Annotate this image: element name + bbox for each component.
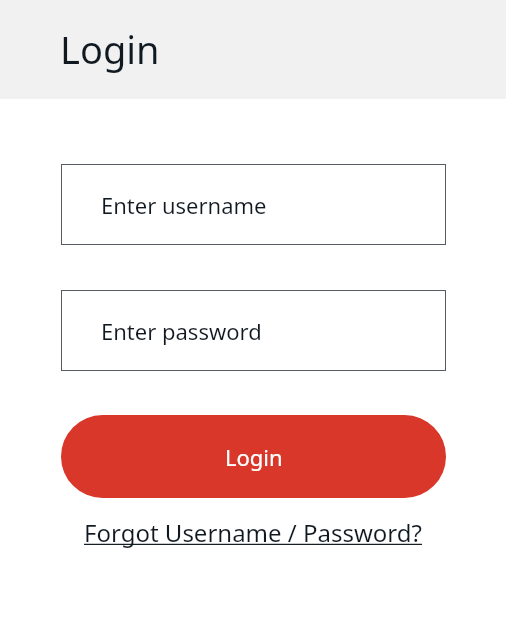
staticText: Login bbox=[225, 442, 283, 472]
button[interactable]: Forgot Username / Password? bbox=[84, 516, 422, 549]
button[interactable]: Enter password bbox=[61, 290, 446, 371]
button[interactable]: Enter username bbox=[61, 164, 446, 245]
staticText: Enter username bbox=[101, 190, 267, 220]
staticText: Login bbox=[60, 23, 160, 75]
staticText: Forgot Username / Password? bbox=[84, 516, 422, 549]
button[interactable]: Login bbox=[61, 415, 446, 498]
staticText: Enter password bbox=[101, 316, 262, 346]
